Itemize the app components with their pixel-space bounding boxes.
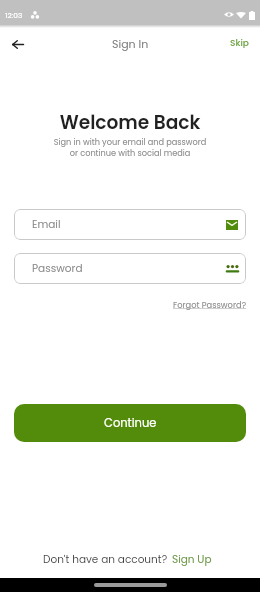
staticText: Continue	[104, 415, 157, 431]
staticText: Skip	[230, 37, 249, 50]
staticText: Password	[32, 261, 224, 276]
staticText: 12:03	[5, 10, 23, 20]
staticText: Sign In	[112, 36, 149, 51]
staticText: Don't have an account?	[43, 552, 168, 567]
staticText: Email	[32, 217, 225, 232]
button[interactable]: Continue	[14, 404, 246, 442]
staticText: Sign in with your email and password or …	[0, 136, 260, 159]
button[interactable]: Sign Up	[172, 552, 212, 567]
button[interactable]: Back	[7, 32, 29, 54]
button[interactable]: Email	[14, 209, 246, 240]
button[interactable]: Skip	[230, 37, 260, 50]
button[interactable]: Password	[14, 253, 246, 284]
button[interactable]: Forgot Password?	[173, 299, 246, 311]
staticText: Welcome Back	[0, 109, 260, 135]
